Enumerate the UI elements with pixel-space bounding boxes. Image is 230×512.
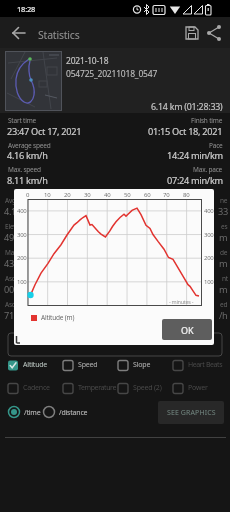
staticText: 8.11 km/h — [7, 174, 48, 187]
staticText: 33 — [218, 205, 228, 218]
staticText: Ascent time — [5, 274, 39, 283]
staticText: /time — [24, 408, 41, 418]
staticText: 492 m — [4, 231, 30, 244]
staticText: 0 — [26, 191, 30, 199]
staticText: 300 — [17, 231, 27, 239]
staticText: OK — [181, 324, 194, 336]
staticText: 18:28 — [17, 4, 36, 14]
staticText: Average speed — [8, 141, 51, 150]
staticText: /distance — [59, 408, 88, 418]
staticText: m — [219, 257, 228, 270]
staticText: Cadence — [23, 383, 50, 393]
staticText: 80 — [183, 191, 190, 199]
staticText: 100 — [17, 278, 27, 286]
staticText: 10 — [44, 191, 51, 199]
staticText: 400 — [17, 207, 27, 215]
staticText: 400 — [204, 207, 214, 215]
staticText: Speed (2) — [133, 383, 162, 393]
staticText: Start time — [8, 116, 37, 125]
staticText: ne — [220, 196, 228, 205]
staticText: 300 — [204, 231, 214, 239]
staticText: Pace — [209, 141, 223, 150]
staticText: Max. speed — [8, 165, 41, 174]
staticText: 054725_20211018_0547 — [66, 68, 158, 80]
staticText: 4.16 km/h — [7, 149, 48, 162]
staticText: m — [219, 283, 228, 296]
staticText: 07:24 min/km — [167, 174, 223, 187]
staticText: Temperature — [78, 383, 116, 393]
staticText: Speed — [78, 360, 98, 370]
staticText: 14:24 min/km — [167, 149, 223, 162]
staticText: Altitude (m) — [41, 313, 75, 322]
staticText: m — [219, 231, 228, 244]
staticText: Ascent speed — [5, 300, 44, 309]
staticText: Slope — [133, 360, 151, 370]
staticText: Heart Beats — [188, 360, 223, 370]
staticText: 01:15 Oct 18, 2021 — [148, 125, 223, 138]
staticText: Statistics — [38, 28, 80, 42]
staticText: 40 — [104, 191, 111, 199]
staticText: 50 — [124, 191, 131, 199]
staticText: Altitude — [23, 360, 48, 370]
staticText: 70 — [163, 191, 170, 199]
staticText: 6.14 km (01:28:33) — [151, 101, 223, 113]
staticText: 23:47 Oct 17, 2021 — [7, 125, 82, 138]
staticText: 00:50:33 — [4, 283, 39, 296]
staticText: 200 — [17, 254, 27, 262]
staticText: Avg. speed mov. — [5, 196, 52, 205]
staticText: ed — [220, 300, 228, 309]
staticText: /h — [219, 309, 228, 322]
staticText: Max. pace — [193, 165, 223, 174]
staticText: nt — [222, 274, 228, 283]
staticText: 4.13 km/h — [4, 205, 45, 218]
staticText: 200 — [204, 254, 214, 262]
staticText: es — [221, 222, 228, 231]
staticText: 434 m — [4, 257, 30, 270]
staticText: Elevation gain — [5, 222, 45, 231]
staticText: Max. altitude — [5, 248, 43, 257]
staticText: 60 — [144, 191, 151, 199]
staticText: 20 — [64, 191, 71, 199]
staticText: - minutes - — [169, 298, 194, 305]
staticText: de — [220, 248, 228, 257]
staticText: 713 m/h — [4, 309, 38, 322]
staticText: 100 — [204, 278, 214, 286]
staticText: SEE GRAPHICS — [167, 408, 216, 418]
staticText: Power — [188, 383, 208, 393]
staticText: Finish time — [191, 116, 223, 125]
staticText: 30 — [84, 191, 91, 199]
staticText: 2021-10-18 — [66, 55, 109, 67]
